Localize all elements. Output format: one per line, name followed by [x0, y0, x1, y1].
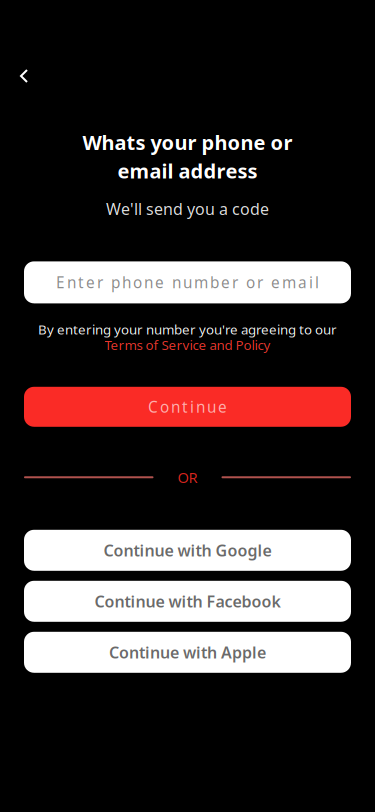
staticText: Continue with Google	[103, 540, 271, 561]
button[interactable]: Terms of Service and Policy	[104, 336, 270, 354]
staticText: Continue with Apple	[109, 642, 266, 663]
button[interactable]: Back	[2, 54, 46, 98]
staticText: By entering your number you're agreeing …	[38, 320, 337, 338]
button[interactable]: Continue with Facebook	[24, 581, 351, 622]
staticText: Continue with Facebook	[94, 591, 280, 612]
staticText: Whats your phone or	[82, 129, 292, 156]
button[interactable]: C o n t i n u e	[0, 387, 375, 427]
staticText: E n t e r p h o n e n u m b e r o r e m …	[56, 272, 319, 293]
staticText: Terms of Service and Policy	[104, 336, 270, 354]
staticText: We'll send you a code	[106, 198, 269, 219]
staticText: C o n t i n u e	[148, 396, 227, 417]
button[interactable]: Continue with Google	[24, 530, 351, 571]
staticText: OR	[177, 467, 197, 487]
button[interactable]: Continue with Apple	[24, 632, 351, 673]
staticText: email address	[117, 158, 257, 184]
